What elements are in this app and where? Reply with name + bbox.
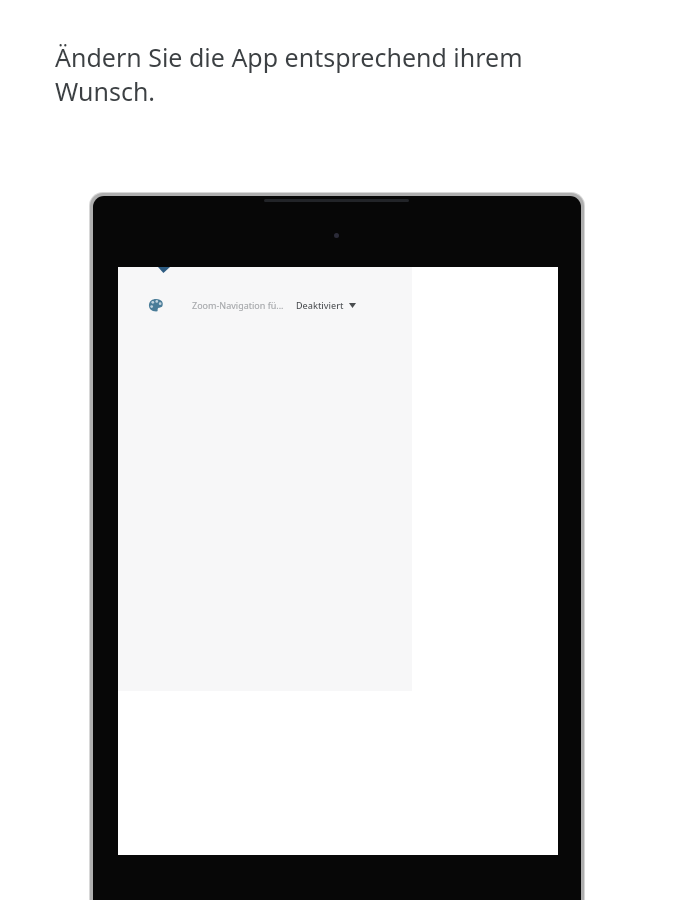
staticText: Ändern Sie die App entsprechend ihrem	[55, 40, 523, 74]
staticText: Wunsch.	[55, 74, 156, 108]
staticText: Deaktiviert	[296, 299, 344, 311]
button[interactable]: Design	[118, 287, 558, 323]
staticText: Zoom-Navigation fü...	[192, 299, 284, 311]
other: Design	[148, 297, 164, 313]
button[interactable]: Deaktiviert	[294, 295, 358, 315]
